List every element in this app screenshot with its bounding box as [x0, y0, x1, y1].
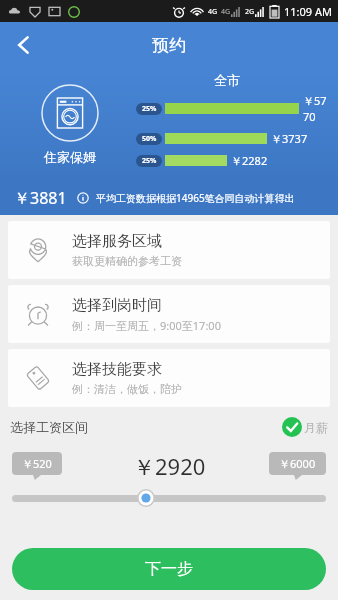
staticText: ￥2920: [133, 451, 206, 481]
staticText: 选择到岗时间: [72, 296, 162, 315]
staticText: 例：清洁，做饭，陪护: [72, 382, 182, 396]
staticText: ￥3737: [271, 131, 308, 146]
button[interactable]: 选择技能要求: [8, 349, 330, 407]
button[interactable]: 选择服务区域: [8, 221, 330, 279]
button[interactable]: 选择到岗时间: [8, 285, 330, 343]
staticText: 预约: [152, 35, 186, 56]
button[interactable]: Salary range slider: [12, 487, 326, 509]
button[interactable]: 下一步: [12, 548, 326, 590]
staticText: 选择工资区间: [10, 419, 88, 435]
staticText: ￥6000: [279, 456, 316, 471]
staticText: 下一步: [145, 559, 193, 579]
button[interactable]: 月薪: [282, 417, 328, 437]
staticText: 选择技能要求: [72, 360, 162, 379]
staticText: 平均工资数据根据14965笔合同自动计算得出: [96, 191, 295, 205]
staticText: ￥520: [22, 456, 52, 471]
staticText: ￥3881: [14, 187, 67, 209]
staticText: 全市: [192, 72, 262, 88]
staticText: ￥5770: [303, 93, 332, 124]
staticText: 月薪: [304, 420, 328, 435]
staticText: 例：周一至周五，9:00至17:00: [72, 318, 221, 333]
button[interactable]: Back: [0, 22, 48, 68]
staticText: 4G: [208, 7, 218, 17]
staticText: 11:09 AM: [284, 4, 332, 19]
staticText: 2G: [245, 7, 255, 17]
staticText: ￥2282: [231, 153, 268, 168]
staticText: 25%: [142, 104, 157, 114]
staticText: 住家保姆: [44, 149, 96, 165]
staticText: 50%: [142, 134, 157, 144]
staticText: 4G: [221, 7, 231, 17]
staticText: 获取更精确的参考工资: [72, 254, 182, 268]
staticText: 25%: [142, 156, 157, 166]
staticText: 选择服务区域: [72, 232, 162, 251]
